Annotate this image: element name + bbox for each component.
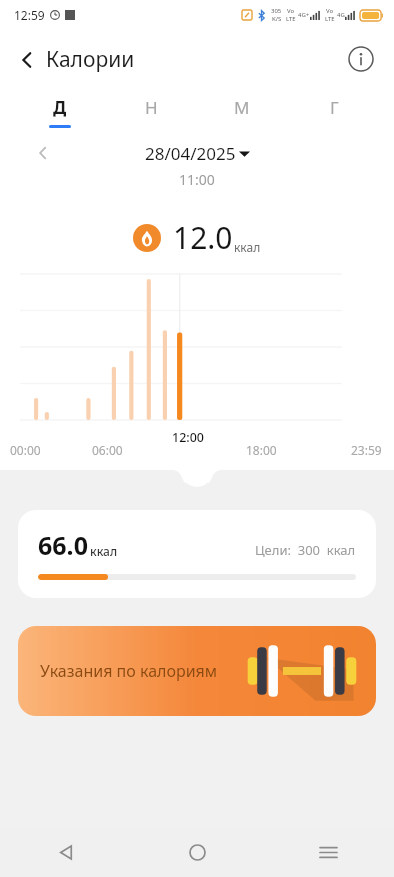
staticText: 18:00 <box>246 442 277 458</box>
staticText: Н <box>145 96 158 119</box>
staticText: М <box>234 96 250 119</box>
staticText: LTE <box>286 15 296 23</box>
staticText: Г <box>330 96 339 119</box>
staticText: K/S <box>272 15 282 23</box>
staticText: Указания по калориям <box>40 660 218 682</box>
staticText: 00:00 <box>10 442 41 458</box>
staticText: 4G+ <box>298 11 310 19</box>
button[interactable]: Н <box>105 88 196 136</box>
staticText: Калории <box>46 45 135 74</box>
staticText: 23:59 <box>351 442 382 458</box>
staticText: 305 <box>271 7 282 15</box>
button[interactable]: М <box>196 88 288 136</box>
button[interactable]: Home <box>132 827 263 877</box>
button[interactable]: Д <box>14 88 105 136</box>
button[interactable]: 28/04/2025 <box>145 142 250 165</box>
staticText: 12.0 <box>173 217 233 258</box>
staticText: Vo <box>287 7 295 15</box>
other: Back <box>18 51 36 69</box>
button[interactable]: Back <box>18 45 135 74</box>
button[interactable]: Previous day <box>32 142 54 164</box>
staticText: 4G <box>337 11 345 19</box>
staticText: ккал <box>234 239 261 255</box>
staticText: Vo <box>326 7 334 15</box>
staticText: 28/04/2025 <box>145 142 236 165</box>
staticText: 66.0 <box>38 528 88 562</box>
staticText: 12:00 <box>172 429 205 446</box>
button[interactable]: Г <box>288 88 380 136</box>
staticText: 06:00 <box>92 442 123 458</box>
button[interactable]: 66.0 <box>18 510 376 598</box>
staticText: Д <box>53 96 67 119</box>
staticText: 12:59 <box>14 7 45 23</box>
staticText: 11:00 <box>179 170 215 189</box>
staticText: LTE <box>325 15 335 23</box>
button[interactable]: Recent apps <box>263 827 394 877</box>
button[interactable]: Указания по калориям <box>18 626 376 716</box>
staticText: ккал <box>90 543 118 559</box>
staticText: Цели: 300 ккал <box>255 541 356 559</box>
button[interactable]: Back <box>0 827 132 877</box>
button[interactable]: Information <box>348 46 374 72</box>
